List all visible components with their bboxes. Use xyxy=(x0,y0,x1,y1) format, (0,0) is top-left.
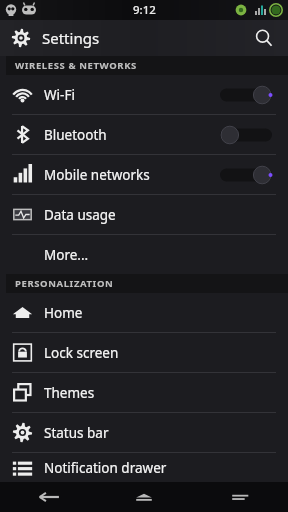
button[interactable]: Settings xyxy=(8,25,34,51)
staticText: Home xyxy=(44,304,288,322)
staticText: Wi-Fi xyxy=(44,86,218,104)
button[interactable]: Mobile networks xyxy=(0,155,288,194)
button[interactable]: On xyxy=(218,164,274,186)
button[interactable]: Home xyxy=(96,482,192,512)
button[interactable]: Off xyxy=(218,124,274,146)
button[interactable]: Data usage xyxy=(0,195,288,234)
staticText: 9:12 xyxy=(133,2,156,18)
staticText: PERSONALIZATION xyxy=(15,277,114,290)
staticText: More... xyxy=(44,246,288,264)
staticText: Mobile networks xyxy=(44,166,218,184)
button[interactable]: Home xyxy=(0,293,288,332)
button[interactable]: On xyxy=(218,84,274,106)
button[interactable]: Recent apps xyxy=(192,482,288,512)
button[interactable]: Themes xyxy=(0,373,288,412)
button[interactable]: Lock screen xyxy=(0,333,288,372)
button[interactable]: Back xyxy=(0,482,96,512)
staticText: Data usage xyxy=(44,206,288,224)
staticText: Lock screen xyxy=(44,344,288,362)
staticText: Bluetooth xyxy=(44,126,218,144)
staticText: Status bar xyxy=(44,424,288,442)
staticText: Notification drawer xyxy=(44,459,288,477)
staticText: Settings xyxy=(42,28,250,48)
button[interactable]: More... xyxy=(0,235,288,274)
button[interactable]: Search xyxy=(250,24,278,52)
staticText: Themes xyxy=(44,384,288,402)
button[interactable]: Wi-Fi xyxy=(0,75,288,114)
button[interactable]: Notification drawer xyxy=(0,453,288,482)
staticText: WIRELESS & NETWORKS xyxy=(15,59,137,72)
button[interactable]: Status bar xyxy=(0,413,288,452)
button[interactable]: Bluetooth xyxy=(0,115,288,154)
